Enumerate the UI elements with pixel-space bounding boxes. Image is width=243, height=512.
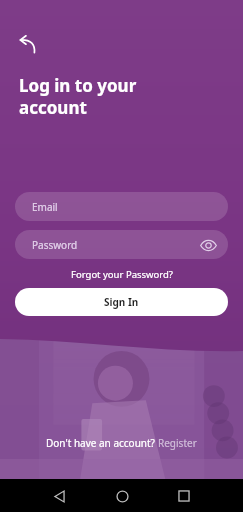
- staticText: Log in to your account: [19, 74, 137, 119]
- button[interactable]: Don't have an account?: [0, 433, 243, 453]
- button[interactable]: Back: [11, 28, 45, 62]
- staticText: Password: [32, 238, 78, 252]
- staticText: Email: [32, 200, 58, 214]
- button[interactable]: Back: [44, 481, 74, 511]
- button[interactable]: Show password: [196, 233, 220, 257]
- staticText: Sign In: [104, 295, 139, 309]
- button[interactable]: Password: [15, 230, 228, 259]
- staticText: Don't have an account?: [46, 436, 158, 450]
- button[interactable]: Email: [15, 192, 228, 221]
- staticText: Forgot your Password?: [71, 268, 173, 281]
- button[interactable]: Home: [107, 481, 137, 511]
- button[interactable]: Recents: [169, 481, 199, 511]
- button[interactable]: Forgot your Password?: [63, 266, 181, 283]
- staticText: Register: [158, 436, 197, 450]
- button[interactable]: Sign In: [15, 288, 228, 316]
